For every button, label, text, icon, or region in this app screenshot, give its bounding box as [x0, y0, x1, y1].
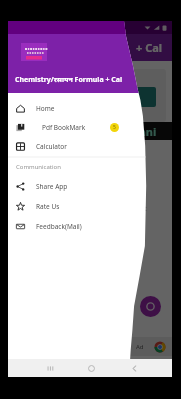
button[interactable]: Refresh — [140, 296, 161, 317]
staticText: Chemistry/रसायन Formula + Cal — [15, 75, 123, 85]
staticText: + Cal — [136, 40, 163, 55]
staticText: ...ani — [130, 124, 157, 139]
staticText: text — [134, 204, 147, 214]
button[interactable]: Pdf BookMark — [8, 118, 126, 136]
button[interactable]: Share App — [8, 177, 126, 195]
staticText: Home — [36, 104, 55, 113]
staticText: Communication — [16, 163, 61, 171]
button[interactable]: Rate Us — [8, 197, 126, 215]
staticText: Calculator — [36, 142, 67, 151]
staticText: Feedback(Mail) — [36, 222, 82, 231]
button[interactable]: Home — [8, 99, 126, 117]
staticText: Ad — [136, 343, 144, 351]
staticText: Pdf BookMark — [42, 123, 86, 132]
button[interactable]: Back — [127, 361, 141, 375]
staticText: Share App — [36, 182, 68, 191]
button[interactable]: Recents — [43, 361, 57, 375]
button[interactable]: Calculator — [8, 137, 126, 155]
staticText: 5 — [113, 124, 116, 131]
button[interactable]: Feedback(Mail) — [8, 217, 126, 235]
staticText: Rate Us — [36, 202, 60, 211]
button[interactable]: Home — [84, 361, 98, 375]
